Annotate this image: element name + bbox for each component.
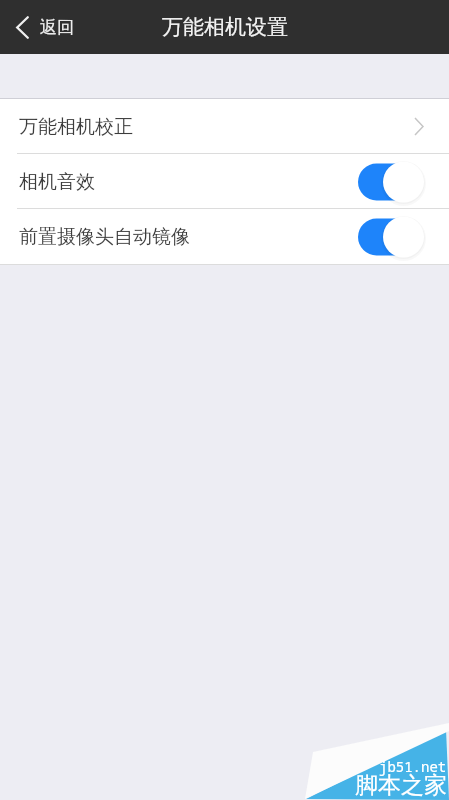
- staticText: 前置摄像头自动镜像: [19, 225, 190, 249]
- staticText: 万能相机校正: [19, 115, 133, 139]
- staticText: 返回: [40, 17, 74, 38]
- button[interactable]: 前置摄像头自动镜像 toggle, on: [358, 216, 424, 258]
- other: Open 万能相机校正: [414, 118, 424, 135]
- staticText: 脚本之家: [355, 771, 447, 800]
- button[interactable]: 返回: [0, 0, 90, 54]
- staticText: jb51.net: [379, 757, 447, 776]
- button[interactable]: 前置摄像头自动镜像: [0, 209, 449, 264]
- button[interactable]: 相机音效 toggle, on: [358, 161, 424, 203]
- staticText: 相机音效: [19, 170, 95, 194]
- button[interactable]: 相机音效: [0, 154, 449, 209]
- button[interactable]: 万能相机校正: [0, 99, 449, 154]
- staticText: 万能相机设置: [162, 14, 288, 40]
